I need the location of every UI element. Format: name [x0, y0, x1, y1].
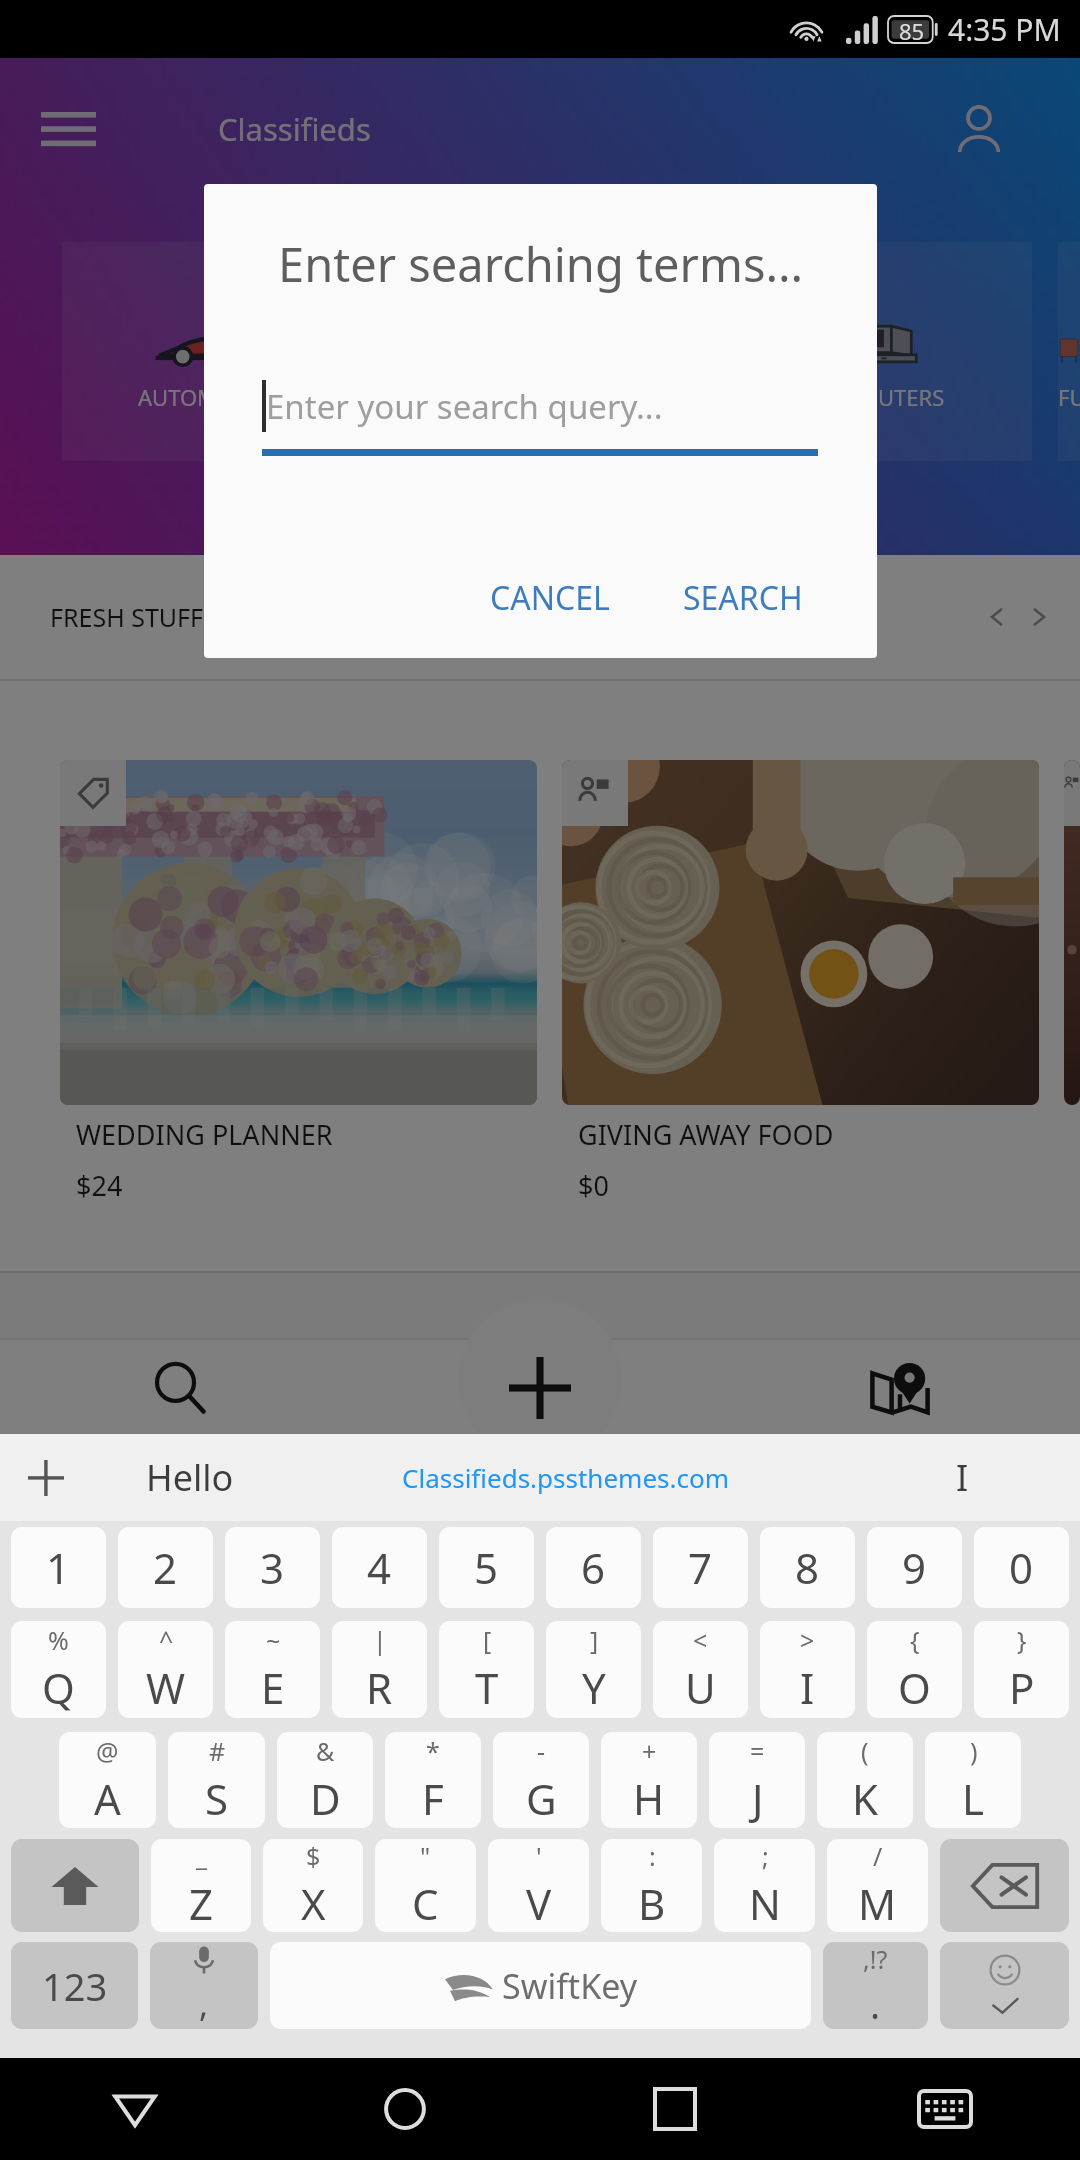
staticText: 8 [795, 1539, 820, 1596]
staticText: ~ [266, 1623, 281, 1657]
button[interactable]: Add [0, 1434, 92, 1521]
staticText: CANCEL [490, 576, 610, 620]
staticText: N [749, 1875, 781, 1932]
button[interactable]: FURNITURE [1058, 242, 1080, 461]
staticText: M [858, 1875, 897, 1932]
button[interactable]: Add listing [360, 1340, 720, 1435]
button[interactable]: ' [488, 1839, 589, 1932]
staticText: [ [483, 1623, 492, 1657]
button[interactable]: Keyboard [810, 2058, 1080, 2160]
staticText: L [962, 1770, 985, 1827]
button[interactable]: ) [925, 1732, 1021, 1828]
button[interactable]: " [375, 1839, 476, 1932]
button[interactable] [940, 1942, 1069, 2029]
button[interactable]: > [760, 1621, 855, 1718]
button[interactable]: 0 [974, 1527, 1069, 1608]
button[interactable]: 6 [546, 1527, 641, 1608]
button[interactable]: _ [151, 1839, 251, 1932]
button[interactable]: WEDDING PLANNER [60, 760, 537, 1204]
staticText: COMPUTERS [814, 382, 945, 412]
button[interactable]: Next [1018, 596, 1060, 638]
button[interactable]: ROOMS [1064, 760, 1080, 1204]
staticText: ; [762, 1839, 769, 1873]
button[interactable]: Back [0, 2058, 270, 2160]
button[interactable]: ELECTRONICS [394, 242, 700, 461]
staticText: 85 [899, 16, 925, 46]
button[interactable]: & [277, 1732, 373, 1828]
staticText: 3 [260, 1539, 285, 1596]
button[interactable]: Menu [13, 74, 123, 184]
button[interactable]: 5 [439, 1527, 534, 1608]
button[interactable]: Hello [92, 1434, 287, 1521]
button[interactable]: 4 [332, 1527, 427, 1608]
button[interactable]: + [601, 1732, 697, 1828]
button[interactable]: { [867, 1621, 962, 1718]
button[interactable]: 9 [867, 1527, 962, 1608]
button[interactable]: [ [439, 1621, 534, 1718]
staticText: + [642, 1734, 657, 1768]
staticText: ] [590, 1623, 599, 1657]
button[interactable]: 1 [11, 1527, 106, 1608]
staticText: R [366, 1659, 393, 1716]
button[interactable]: ; [714, 1839, 815, 1932]
staticText: ) [970, 1734, 978, 1768]
button[interactable]: ~ [225, 1621, 320, 1718]
button[interactable] [11, 1839, 139, 1932]
button[interactable]: 8 [760, 1527, 855, 1608]
button[interactable]: * [385, 1732, 481, 1828]
staticText: ^ [159, 1623, 174, 1657]
staticText: ( [861, 1734, 869, 1768]
button[interactable]: CANCEL [472, 562, 628, 634]
button[interactable]: SEARCH [665, 562, 821, 634]
button[interactable]: ( [817, 1732, 913, 1828]
button[interactable]: SwiftKey [270, 1942, 811, 2029]
button[interactable]: , [150, 1942, 258, 2029]
button[interactable]: $ [263, 1839, 363, 1932]
button[interactable] [940, 1839, 1069, 1932]
button[interactable]: I [845, 1434, 1080, 1521]
staticText: , [199, 1981, 209, 2027]
staticText: # [209, 1734, 226, 1768]
button[interactable]: COMPUTERS [726, 242, 1032, 461]
button[interactable]: % [11, 1621, 106, 1718]
staticText: W [146, 1659, 186, 1716]
staticText: V [526, 1875, 552, 1932]
button[interactable]: Account [924, 74, 1034, 184]
button[interactable]: : [601, 1839, 702, 1932]
button[interactable]: 7 [653, 1527, 748, 1608]
button[interactable]: | [332, 1621, 427, 1718]
staticText: GIVING AWAY FOOD [578, 1116, 834, 1153]
staticText: * [426, 1734, 440, 1768]
button[interactable]: ,!? [823, 1942, 928, 2029]
button[interactable]: ^ [118, 1621, 213, 1718]
button[interactable]: Home [270, 2058, 540, 2160]
button[interactable]: @ [59, 1732, 156, 1828]
button[interactable]: Previous [976, 596, 1018, 638]
button[interactable]: # [168, 1732, 265, 1828]
button[interactable]: = [709, 1732, 805, 1828]
button[interactable]: - [493, 1732, 589, 1828]
staticText: Classifieds [218, 108, 371, 150]
button[interactable]: / [827, 1839, 928, 1932]
button[interactable]: AUTOMOBILES [62, 242, 368, 461]
button[interactable]: 123 [11, 1942, 138, 2029]
staticText: X [301, 1875, 326, 1932]
staticText: SwiftKey [502, 1963, 638, 2009]
button[interactable]: } [974, 1621, 1069, 1718]
button[interactable]: ] [546, 1621, 641, 1718]
button[interactable]: Map [720, 1340, 1080, 1435]
button[interactable]: Classifieds.pssthemes.com [287, 1434, 845, 1521]
staticText: F [422, 1770, 444, 1827]
staticText: B [638, 1875, 666, 1932]
staticText: " [420, 1839, 431, 1873]
staticText: 4 [367, 1539, 392, 1596]
button[interactable]: 2 [118, 1527, 213, 1608]
button[interactable]: Search [0, 1340, 360, 1435]
button[interactable]: Recents [540, 2058, 810, 2160]
staticText: = [750, 1734, 765, 1768]
staticText: @ [96, 1734, 119, 1768]
staticText: FRESH STUFF [50, 600, 204, 634]
button[interactable]: < [653, 1621, 748, 1718]
button[interactable]: GIVING AWAY FOOD [562, 760, 1039, 1204]
button[interactable]: 3 [225, 1527, 320, 1608]
